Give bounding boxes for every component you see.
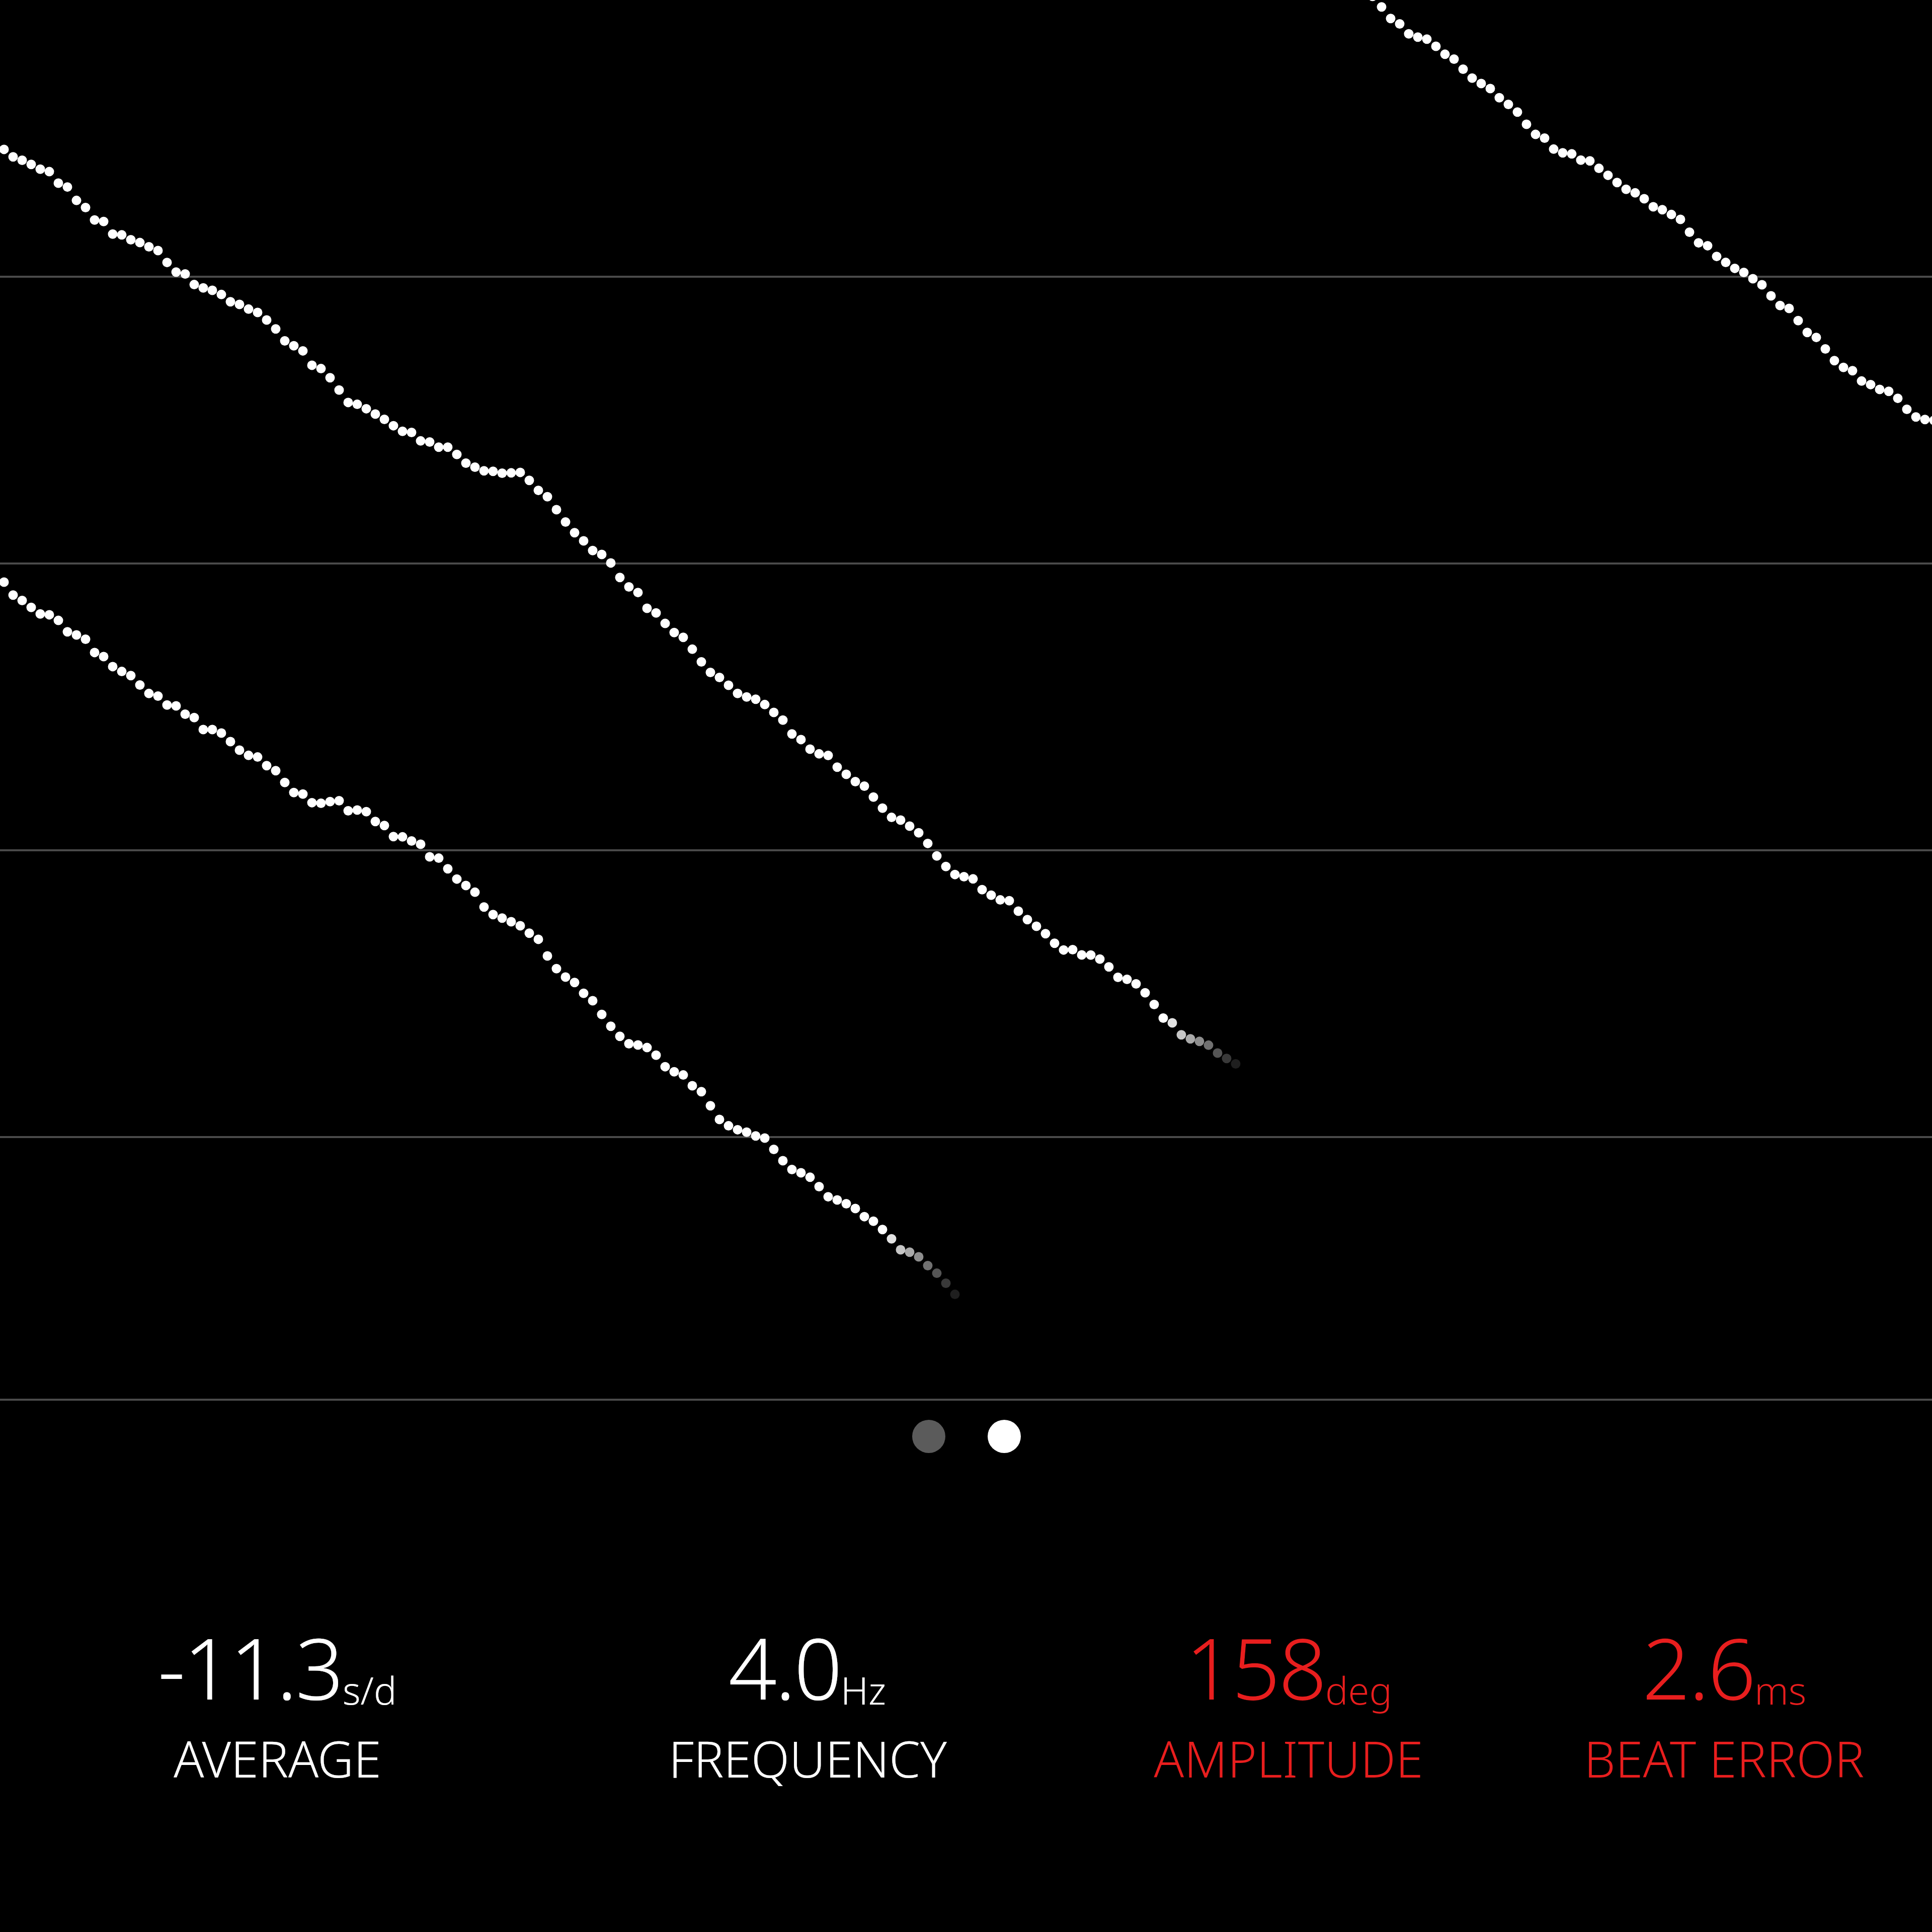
staticText: s/d [343, 1664, 397, 1716]
staticText: ms [1754, 1664, 1807, 1716]
staticText: 158 [1185, 1609, 1325, 1724]
button[interactable]: -11.3 [0, 1609, 554, 1810]
staticText: 2.6 [1642, 1609, 1754, 1724]
staticText: 4.0 [729, 1609, 841, 1724]
staticText: AVERAGE [174, 1724, 381, 1792]
staticText: Hz [841, 1664, 887, 1716]
staticText: AMPLITUDE [1154, 1724, 1423, 1792]
button[interactable]: Page 1 [901, 1408, 957, 1465]
staticText: deg [1325, 1664, 1392, 1716]
button[interactable]: 158 [1061, 1609, 1516, 1810]
button[interactable]: Page 2 [957, 1408, 1013, 1465]
button[interactable]: 4.0 [554, 1609, 1061, 1810]
button[interactable]: 2.6 [1516, 1609, 1932, 1810]
staticText: -11.3 [158, 1609, 343, 1724]
staticText: FREQUENCY [669, 1724, 947, 1792]
staticText: BEAT ERROR [1584, 1724, 1865, 1792]
